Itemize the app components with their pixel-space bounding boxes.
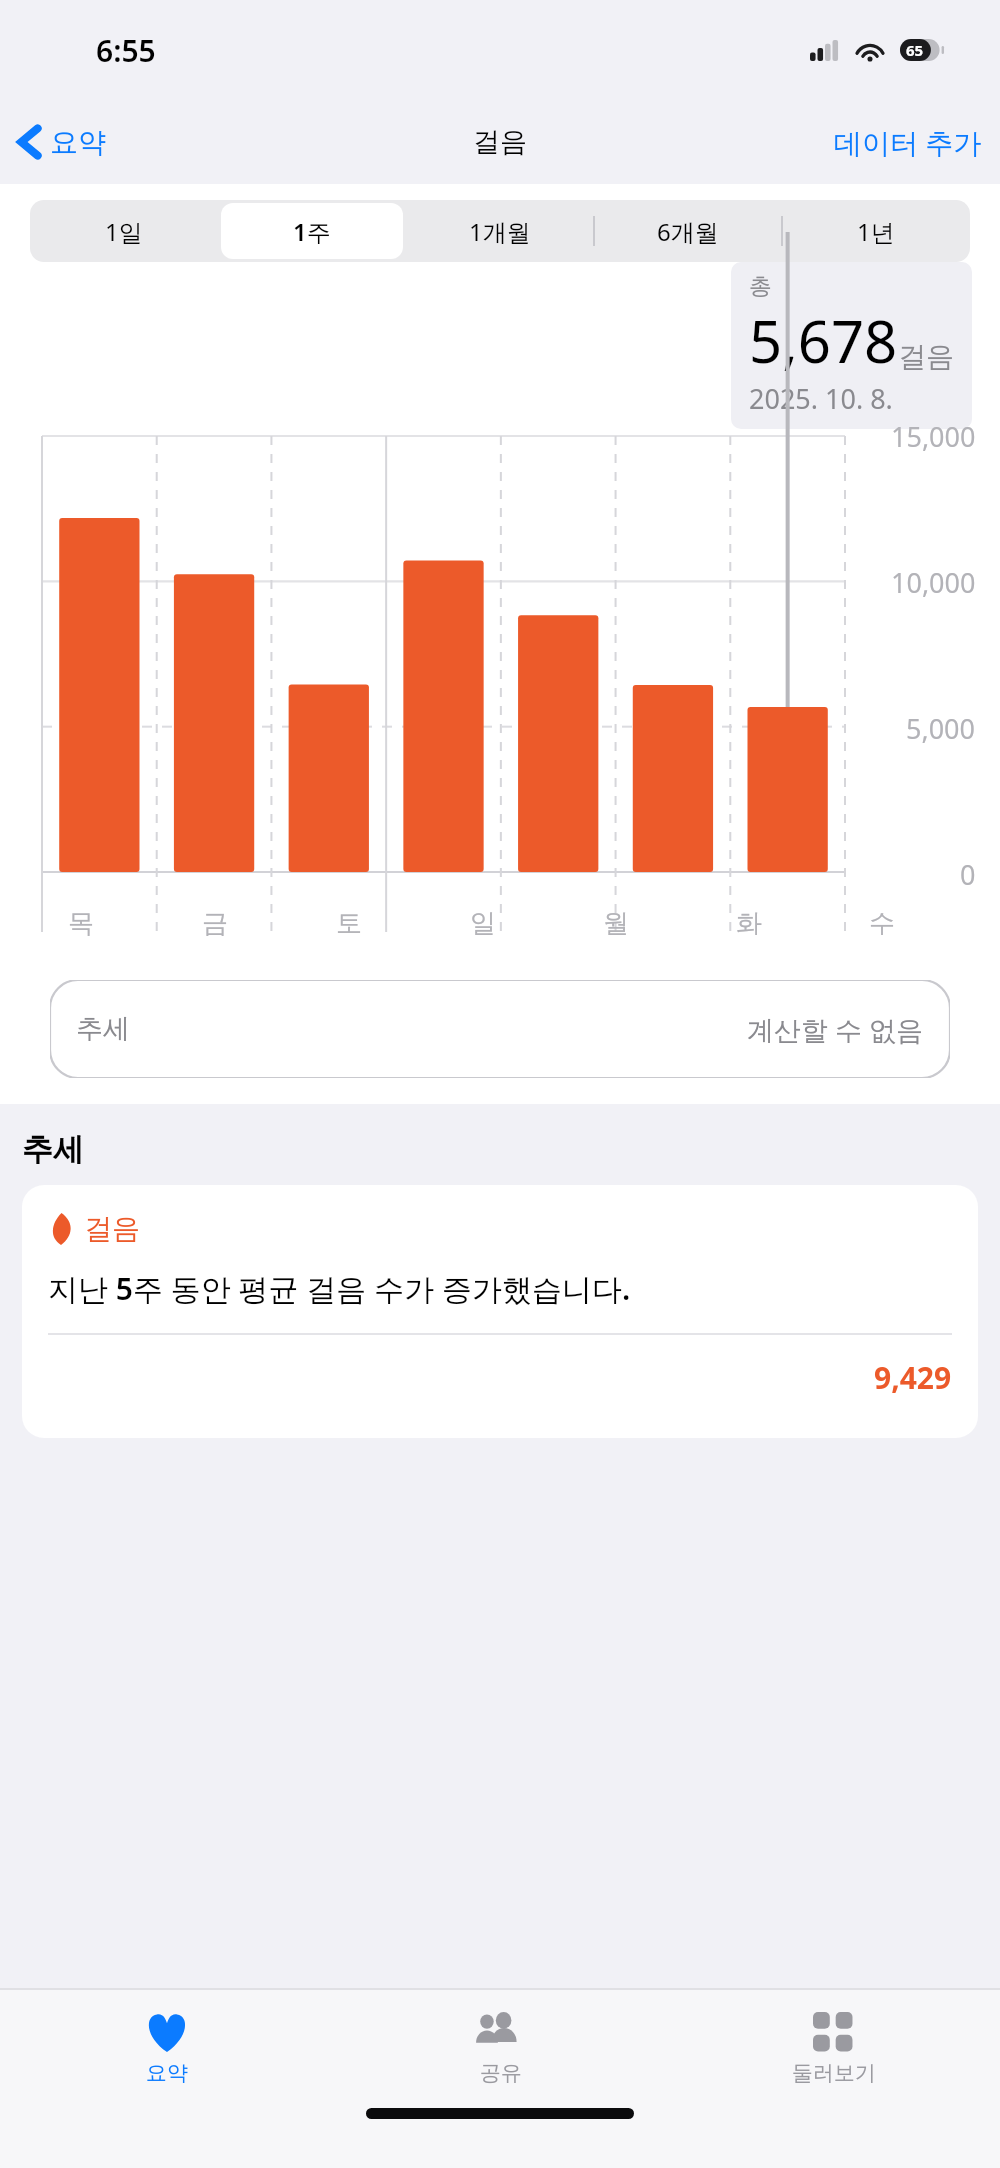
button[interactable]: 1일 [33, 203, 215, 259]
staticText: 10,000 [891, 564, 976, 601]
staticText: 9,429 [874, 1357, 952, 1398]
staticText: 요약 [146, 2060, 188, 2086]
staticText: 6:55 [96, 30, 156, 71]
staticText: 1일 [105, 215, 143, 248]
staticText: 금 [202, 907, 228, 940]
staticText: 1주 [293, 215, 331, 248]
button[interactable]: 데이터 추가 [816, 100, 1000, 184]
staticText: 계산할 수 없음 [747, 1011, 924, 1048]
staticText: 목 [68, 907, 94, 940]
button[interactable]: 1개월 [409, 203, 591, 259]
staticText: 지난 5주 동안 평균 걸음 수가 증가했습니다. [48, 1268, 631, 1309]
staticText: 5,000 [906, 710, 976, 747]
staticText: 2025. 10. 8. [749, 380, 893, 417]
staticText: 추세 [22, 1130, 84, 1169]
button[interactable]: 1년 [785, 203, 967, 259]
button[interactable]: 요약 [0, 1990, 334, 2108]
staticText: 토 [336, 907, 362, 940]
staticText: 둘러보기 [792, 2060, 876, 2086]
staticText: 수 [869, 907, 895, 940]
button[interactable]: 요약 [0, 100, 116, 184]
staticText: 5,678 [749, 301, 898, 380]
button[interactable]: 추세 [50, 980, 950, 1078]
staticText: 걸음 [84, 1211, 140, 1246]
staticText: 공유 [480, 2060, 522, 2086]
button[interactable]: 6개월 [597, 203, 779, 259]
staticText: 1년 [857, 215, 895, 248]
staticText: 총 [749, 272, 772, 301]
staticText: 1개월 [469, 215, 531, 248]
staticText: 6개월 [657, 215, 719, 248]
staticText: 화 [736, 907, 762, 940]
staticText: 걸음 [473, 125, 527, 159]
staticText: 일 [470, 907, 496, 940]
button[interactable]: 둘러보기 [667, 1990, 1000, 2108]
staticText: 15,000 [891, 418, 976, 455]
button[interactable]: 공유 [334, 1990, 667, 2108]
staticText: 월 [603, 907, 629, 940]
staticText: 걸음 [898, 339, 954, 374]
button[interactable]: 1주 [221, 203, 403, 259]
button[interactable]: 걸음 [22, 1185, 978, 1438]
staticText: 추세 [76, 1012, 130, 1046]
staticText: 데이터 추가 [834, 123, 982, 161]
staticText: 0 [960, 856, 976, 893]
staticText: 요약 [50, 125, 106, 160]
staticText: 65 [906, 40, 924, 60]
